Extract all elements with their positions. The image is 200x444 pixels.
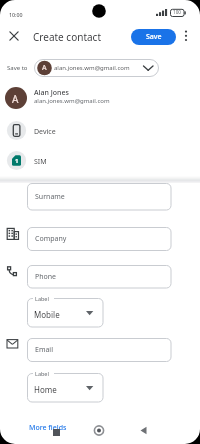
- button[interactable]: Save: [131, 29, 176, 45]
- button[interactable]: A: [34, 59, 159, 77]
- staticText: Device: [34, 127, 56, 137]
- staticText: Label: [35, 370, 49, 377]
- staticText: Surname: [35, 192, 65, 202]
- button[interactable]: Phone: [27, 265, 172, 289]
- button[interactable]: More fields: [24, 420, 74, 434]
- staticText: Company: [35, 234, 67, 244]
- staticText: A: [42, 63, 47, 73]
- button[interactable]: [180, 28, 192, 44]
- staticText: Mobile: [34, 309, 60, 320]
- button[interactable]: [133, 421, 157, 439]
- button[interactable]: 1: [0, 149, 200, 172]
- staticText: SIM: [34, 157, 47, 167]
- button[interactable]: Surname: [27, 183, 172, 211]
- staticText: Save to: [7, 64, 28, 72]
- staticText: Label: [35, 295, 49, 302]
- staticText: Create contact: [33, 30, 102, 44]
- button[interactable]: [6, 28, 22, 44]
- staticText: Home: [34, 384, 57, 395]
- staticText: alan.jones.wm@gmail.com: [34, 97, 110, 105]
- button[interactable]: Email: [27, 338, 172, 362]
- staticText: Email: [35, 345, 53, 355]
- staticText: Alan Jones: [34, 88, 69, 98]
- staticText: 1: [15, 157, 19, 165]
- button[interactable]: Label: [27, 298, 104, 328]
- button[interactable]: [45, 423, 69, 441]
- staticText: alan.jones.wm@gmail.com: [54, 64, 130, 72]
- staticText: 10:00: [9, 11, 23, 18]
- button[interactable]: Device: [0, 120, 200, 142]
- staticText: More fields: [29, 423, 67, 433]
- staticText: Phone: [35, 272, 57, 282]
- button[interactable]: Label: [27, 373, 104, 403]
- staticText: Save: [146, 32, 162, 42]
- button[interactable]: [87, 421, 111, 439]
- staticText: 100: [173, 9, 181, 15]
- button[interactable]: A: [0, 85, 200, 111]
- staticText: A: [12, 92, 19, 106]
- button[interactable]: Company: [27, 227, 172, 251]
